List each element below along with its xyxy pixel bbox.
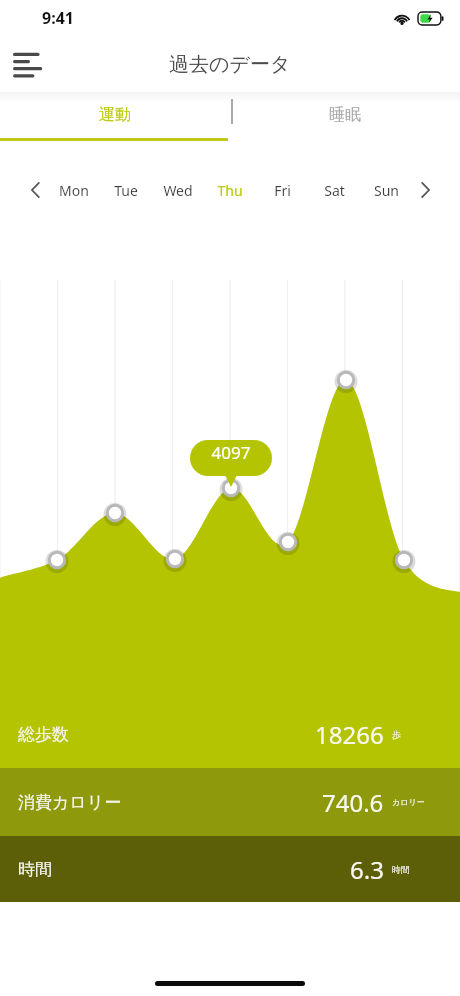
- staticText: Sun: [374, 181, 399, 200]
- button[interactable]: Next week: [412, 177, 438, 203]
- button[interactable]: 総歩数: [0, 700, 460, 768]
- staticText: Tue: [114, 181, 138, 200]
- staticText: 過去のデータ: [169, 52, 291, 77]
- button[interactable]: Wed: [152, 173, 204, 207]
- button[interactable]: Menu: [6, 40, 54, 88]
- staticText: 時間: [18, 859, 52, 880]
- staticText: カロリー: [392, 797, 425, 807]
- button[interactable]: Previous week: [22, 177, 48, 203]
- staticText: 18266: [315, 718, 384, 751]
- staticText: 4097: [204, 441, 258, 464]
- staticText: Sat: [324, 181, 345, 200]
- staticText: 時間: [392, 864, 410, 875]
- button[interactable]: Thu: [204, 173, 256, 207]
- button[interactable]: Fri: [256, 173, 308, 207]
- staticText: 総歩数: [18, 724, 69, 745]
- button[interactable]: 睡眠: [230, 92, 460, 145]
- button[interactable]: Mon: [48, 173, 100, 207]
- staticText: Fri: [274, 181, 291, 200]
- button[interactable]: Sat: [308, 173, 360, 207]
- staticText: Thu: [217, 181, 243, 200]
- staticText: 歩: [392, 729, 401, 740]
- staticText: 消費カロリー: [18, 792, 122, 813]
- button[interactable]: Tue: [100, 173, 152, 207]
- staticText: 6.3: [350, 853, 384, 886]
- button[interactable]: Sun: [360, 173, 412, 207]
- button[interactable]: 消費カロリー: [0, 768, 460, 836]
- button[interactable]: 時間: [0, 836, 460, 902]
- staticText: 9:41: [42, 7, 74, 29]
- staticText: 睡眠: [329, 105, 361, 125]
- staticText: Wed: [163, 181, 193, 200]
- staticText: 740.6: [322, 786, 384, 819]
- staticText: 運動: [99, 105, 131, 125]
- button[interactable]: 運動: [0, 92, 230, 145]
- staticText: Mon: [59, 181, 89, 200]
